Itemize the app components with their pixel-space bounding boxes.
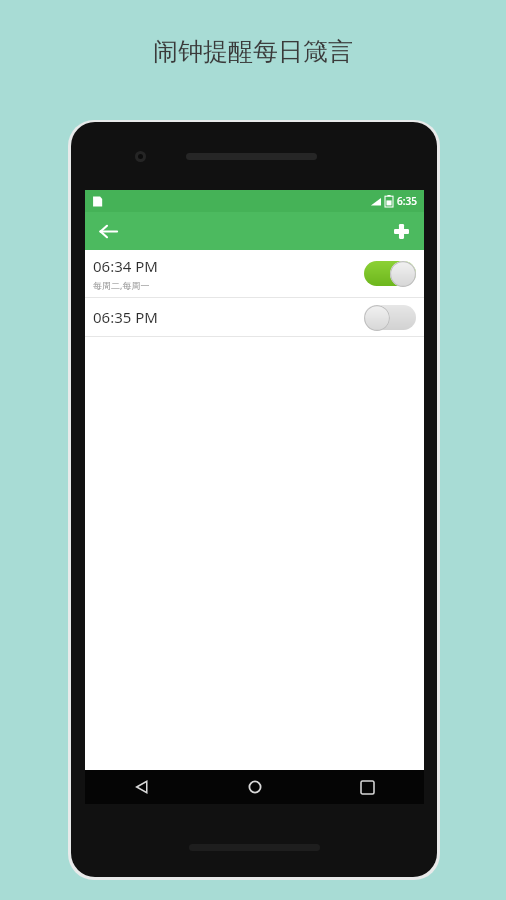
staticText: 06:35 PM	[93, 307, 158, 327]
button[interactable]: Add alarm	[384, 214, 418, 248]
button[interactable]: Alarm on	[364, 260, 416, 287]
button[interactable]: Alarm off	[364, 304, 416, 331]
button[interactable]: 06:34 PM	[85, 250, 424, 297]
staticText: 6:35	[397, 194, 417, 208]
button[interactable]: Back	[85, 770, 198, 804]
staticText: 每周二,每周一	[93, 279, 150, 291]
button[interactable]: 06:35 PM	[85, 298, 424, 336]
button[interactable]: Recent apps	[311, 770, 424, 804]
staticText: 06:34 PM	[93, 256, 158, 276]
button[interactable]: Home	[198, 770, 311, 804]
staticText: 闹钟提醒每日箴言	[0, 36, 506, 67]
button[interactable]: Back	[91, 214, 125, 248]
